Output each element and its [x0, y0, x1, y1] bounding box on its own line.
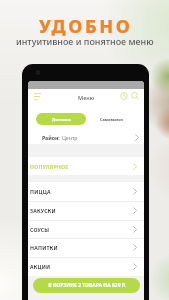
staticText: НАПИТКИ — [30, 244, 58, 251]
button[interactable]: Самовывоз — [86, 113, 136, 125]
staticText: интуитивное и понятное меню — [16, 35, 154, 47]
button[interactable]: ЗАКУСКИ — [30, 201, 137, 220]
staticText: Самовывоз — [100, 117, 123, 122]
button[interactable]: АКЦИИ — [30, 257, 137, 276]
staticText: ЗАКУСКИ — [30, 207, 56, 214]
button[interactable]: Район: — [42, 130, 139, 144]
staticText: УДОБНО — [39, 14, 133, 39]
staticText: Доставка — [52, 117, 71, 122]
staticText: ПИЦЦА — [30, 188, 51, 195]
button[interactable]: ПОПУЛЯРНОЕ — [30, 157, 137, 175]
button[interactable]: ПИЦЦА — [30, 182, 137, 201]
staticText: Район: — [42, 134, 62, 141]
staticText: СОУСЫ — [30, 226, 50, 233]
button[interactable]: Menu — [28, 89, 44, 107]
staticText: ПОПУЛЯРНОЕ — [30, 163, 69, 170]
button[interactable]: Search — [129, 90, 140, 101]
button[interactable]: Доставка — [36, 113, 86, 125]
button[interactable]: В КОРЗИНЕ 2 ТОВАРА НА 829 Р. — [33, 278, 140, 293]
staticText: Меню — [78, 94, 95, 102]
button[interactable]: НАПИТКИ — [30, 238, 137, 257]
button[interactable]: Order status — [118, 90, 129, 101]
staticText: Центр — [62, 134, 78, 141]
button[interactable]: СОУСЫ — [30, 220, 137, 239]
staticText: В КОРЗИНЕ 2 ТОВАРА НА 829 Р. — [48, 282, 126, 289]
staticText: АКЦИИ — [30, 263, 51, 270]
